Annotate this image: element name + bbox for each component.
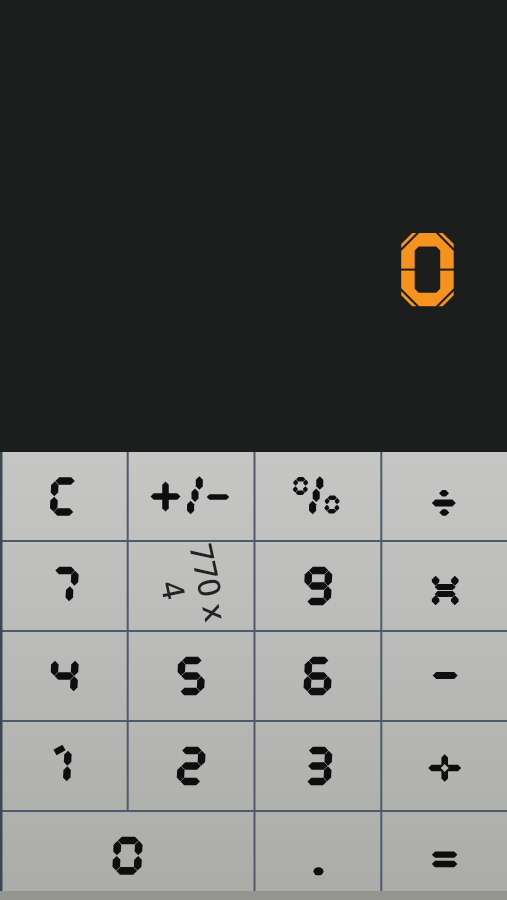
button[interactable] (381, 811, 507, 900)
button[interactable] (1, 721, 128, 811)
button[interactable] (381, 631, 507, 721)
staticText: 770 x 4 (145, 539, 238, 633)
button[interactable] (1, 452, 128, 541)
button[interactable] (255, 631, 382, 721)
button[interactable] (128, 631, 255, 721)
button[interactable] (1, 811, 255, 900)
button[interactable] (128, 452, 255, 541)
button[interactable] (381, 452, 507, 541)
button[interactable] (255, 721, 382, 811)
button[interactable] (255, 811, 382, 900)
button[interactable] (381, 721, 507, 811)
button[interactable] (255, 541, 382, 631)
button[interactable] (255, 452, 382, 541)
button[interactable] (381, 541, 507, 631)
button[interactable] (128, 541, 255, 631)
button[interactable] (1, 541, 128, 631)
button[interactable] (128, 721, 255, 811)
button[interactable] (1, 631, 128, 721)
